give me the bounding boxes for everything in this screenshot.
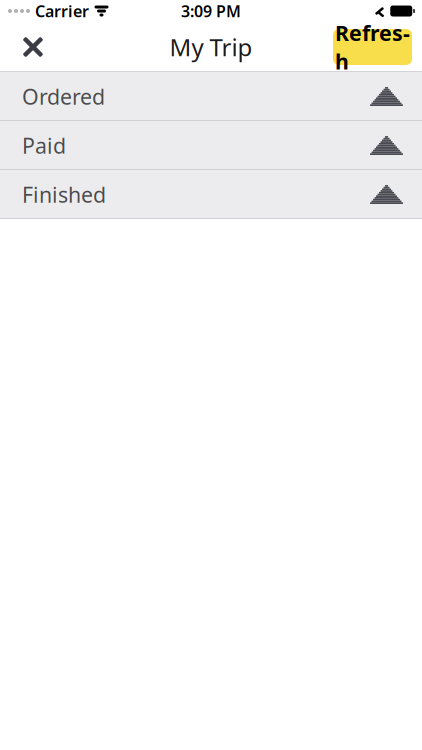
staticText: Carrier [35, 0, 89, 22]
staticText: 3:09 PM [181, 0, 241, 22]
button[interactable]: Paid [0, 121, 422, 170]
staticText: My Trip [169, 31, 252, 63]
button[interactable]: Close [9, 23, 57, 71]
button[interactable]: Ordered [0, 72, 422, 121]
button[interactable]: Refresh [333, 29, 412, 65]
button[interactable]: Finished [0, 170, 422, 219]
staticText: Ordered [22, 82, 105, 111]
staticText: Refresh [335, 19, 410, 75]
staticText: Finished [22, 180, 106, 209]
staticText: Paid [22, 131, 66, 160]
